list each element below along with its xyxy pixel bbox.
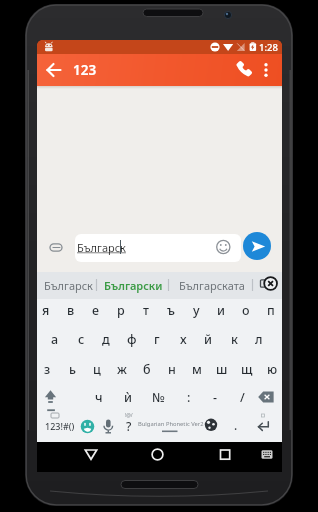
button[interactable] xyxy=(35,354,59,382)
staticText: й xyxy=(204,331,212,348)
staticText: и xyxy=(217,302,225,319)
button[interactable] xyxy=(84,296,108,324)
staticText: з xyxy=(44,361,51,378)
button[interactable] xyxy=(243,232,271,260)
staticText: т xyxy=(143,302,149,319)
staticText: н xyxy=(168,361,176,378)
button[interactable] xyxy=(60,354,84,382)
button[interactable] xyxy=(254,384,280,411)
button[interactable] xyxy=(42,58,66,82)
button[interactable] xyxy=(37,54,282,86)
button[interactable] xyxy=(230,383,254,411)
button[interactable] xyxy=(77,444,105,466)
button[interactable] xyxy=(69,325,93,353)
button[interactable] xyxy=(177,383,201,411)
button[interactable] xyxy=(110,354,134,382)
button[interactable] xyxy=(259,296,283,324)
button[interactable] xyxy=(140,412,196,440)
staticText: щ xyxy=(241,361,253,378)
staticText: ч xyxy=(95,389,103,406)
button[interactable] xyxy=(185,354,209,382)
staticText: р xyxy=(117,302,125,319)
button[interactable] xyxy=(59,296,83,324)
staticText: !@/ xyxy=(125,412,133,419)
staticText: 123!#() xyxy=(45,420,75,432)
button[interactable] xyxy=(260,354,284,382)
staticText: б xyxy=(143,361,151,378)
button[interactable] xyxy=(203,383,227,411)
staticText: с xyxy=(78,331,85,348)
button[interactable] xyxy=(145,325,169,353)
staticText: 1:28 xyxy=(259,41,278,54)
button[interactable] xyxy=(40,272,106,299)
staticText: Българск xyxy=(44,278,93,293)
button[interactable] xyxy=(80,412,100,440)
button[interactable] xyxy=(38,384,64,411)
staticText: : xyxy=(187,389,191,406)
staticText: е xyxy=(92,302,100,319)
staticText: ь xyxy=(69,361,76,378)
button[interactable] xyxy=(87,383,111,411)
button[interactable] xyxy=(109,296,133,324)
button[interactable] xyxy=(94,325,118,353)
staticText: л xyxy=(255,331,263,348)
staticText: у xyxy=(193,302,200,319)
button[interactable] xyxy=(134,296,158,324)
button[interactable] xyxy=(247,325,271,353)
button[interactable] xyxy=(120,325,144,353)
staticText: ц xyxy=(93,361,101,378)
staticText: д xyxy=(102,331,110,348)
staticText: 123 xyxy=(73,61,97,79)
button[interactable] xyxy=(196,325,220,353)
staticText: ф xyxy=(127,331,137,348)
staticText: м xyxy=(192,361,202,378)
button[interactable] xyxy=(106,272,168,299)
staticText: г xyxy=(154,331,160,348)
button[interactable] xyxy=(209,296,233,324)
staticText: Български xyxy=(104,278,163,293)
staticText: ш xyxy=(216,361,228,378)
staticText: / xyxy=(240,389,245,406)
staticText: х xyxy=(180,331,187,348)
button[interactable] xyxy=(159,296,183,324)
staticText: ю xyxy=(267,361,278,378)
button[interactable] xyxy=(75,234,241,262)
staticText: № xyxy=(152,389,165,406)
button[interactable] xyxy=(160,354,184,382)
button[interactable] xyxy=(222,325,246,353)
staticText: в xyxy=(67,302,75,319)
staticText: я xyxy=(42,302,50,319)
button[interactable] xyxy=(98,412,118,440)
button[interactable] xyxy=(146,383,170,411)
button[interactable] xyxy=(198,412,218,440)
button[interactable] xyxy=(41,412,78,440)
button[interactable] xyxy=(171,325,195,353)
staticText: Bulgarian Phonetic Ver2 xyxy=(138,420,204,428)
button[interactable] xyxy=(118,412,138,440)
staticText: Българск xyxy=(77,240,126,255)
button[interactable] xyxy=(143,444,171,466)
button[interactable] xyxy=(235,354,259,382)
button[interactable] xyxy=(34,296,58,324)
staticText: ? xyxy=(126,418,132,434)
button[interactable] xyxy=(234,296,258,324)
button[interactable] xyxy=(184,296,208,324)
staticText: а xyxy=(51,331,59,348)
button[interactable] xyxy=(135,354,159,382)
staticText: . xyxy=(234,417,238,433)
button[interactable] xyxy=(43,325,67,353)
staticText: ъ xyxy=(167,302,175,319)
button[interactable] xyxy=(250,412,280,440)
button[interactable] xyxy=(85,354,109,382)
button[interactable] xyxy=(225,412,245,440)
button[interactable] xyxy=(170,272,254,299)
staticText: о xyxy=(242,302,250,319)
button[interactable] xyxy=(116,383,140,411)
staticText: к xyxy=(231,331,238,348)
staticText: п xyxy=(267,302,275,319)
button[interactable] xyxy=(231,58,255,82)
button[interactable] xyxy=(210,354,234,382)
button[interactable] xyxy=(258,58,274,82)
button[interactable] xyxy=(258,446,276,464)
button[interactable] xyxy=(211,444,239,466)
